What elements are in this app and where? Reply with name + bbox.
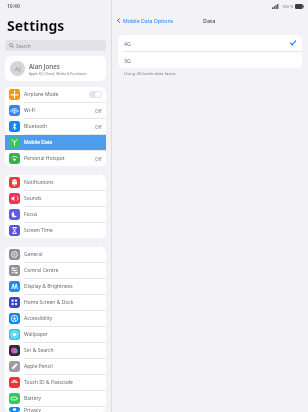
staticText: Off <box>95 108 102 114</box>
staticText: Focus <box>24 211 102 218</box>
staticText: AJ <box>15 65 21 72</box>
staticText: Personal Hotspot <box>24 155 95 162</box>
staticText: Mobile Data <box>24 139 102 146</box>
button[interactable]: Airplane Mode <box>89 91 102 98</box>
staticText: Wallpaper <box>24 331 102 338</box>
staticText: Home Screen & Dock <box>24 299 102 306</box>
staticText: Wi-Fi <box>24 107 95 114</box>
staticText: Mobile Data Options <box>123 17 174 24</box>
button[interactable]: Wi-Fi <box>5 103 106 118</box>
staticText: General <box>24 251 102 258</box>
button[interactable]: Bluetooth <box>5 119 106 134</box>
staticText: Off <box>95 156 102 162</box>
button[interactable]: Wallpaper <box>5 327 106 342</box>
staticText: Settings <box>7 16 65 35</box>
staticText: Search <box>16 43 31 49</box>
staticText: 3G <box>124 57 296 64</box>
staticText: Data <box>203 17 216 24</box>
staticText: Apple Pencil <box>24 363 102 370</box>
staticText: Airplane Mode <box>24 91 89 98</box>
staticText: 100 % <box>282 4 294 9</box>
button[interactable]: Display & Brightness <box>5 279 106 294</box>
staticText: Apple ID, iCloud, Media & Purchases <box>29 71 87 76</box>
button[interactable]: Focus <box>5 207 106 222</box>
button[interactable]: 4G <box>118 35 302 51</box>
button[interactable]: Privacy <box>5 407 106 412</box>
button[interactable]: Personal Hotspot <box>5 151 106 166</box>
button[interactable]: Notifications <box>5 175 106 190</box>
staticText: Alan Jones <box>29 62 60 70</box>
button[interactable]: 3G <box>118 52 302 68</box>
button[interactable]: Sounds <box>5 191 106 206</box>
staticText: Privacy <box>24 407 102 412</box>
staticText: Sounds <box>24 195 102 202</box>
staticText: Off <box>95 124 102 130</box>
button[interactable]: Touch ID & Passcode <box>5 375 106 390</box>
button[interactable]: Airplane Mode <box>5 87 106 102</box>
button[interactable]: Home Screen & Dock <box>5 295 106 310</box>
button[interactable]: Mobile Data Options <box>112 15 178 26</box>
staticText: Accessibility <box>24 315 102 322</box>
button[interactable]: Control Centre <box>5 263 106 278</box>
button[interactable]: Search <box>5 40 106 51</box>
staticText: 10:40 <box>7 3 20 10</box>
button[interactable]: AJ <box>5 56 106 81</box>
staticText: Control Centre <box>24 267 102 274</box>
button[interactable]: Battery <box>5 391 106 406</box>
button[interactable]: Screen Time <box>5 223 106 238</box>
button[interactable]: Apple Pencil <box>5 359 106 374</box>
staticText: Siri & Search <box>24 347 102 354</box>
staticText: Bluetooth <box>24 123 95 130</box>
staticText: Touch ID & Passcode <box>24 379 102 386</box>
button[interactable]: General <box>5 247 106 262</box>
staticText: Screen Time <box>24 227 102 234</box>
staticText: Using 4G loads data faster. <box>124 71 177 77</box>
button[interactable]: Mobile Data <box>5 135 106 150</box>
button[interactable]: Accessibility <box>5 311 106 326</box>
staticText: Battery <box>24 395 102 402</box>
button[interactable]: Siri & Search <box>5 343 106 358</box>
staticText: 4G <box>124 40 290 47</box>
staticText: Display & Brightness <box>24 283 102 290</box>
staticText: Notifications <box>24 179 102 186</box>
